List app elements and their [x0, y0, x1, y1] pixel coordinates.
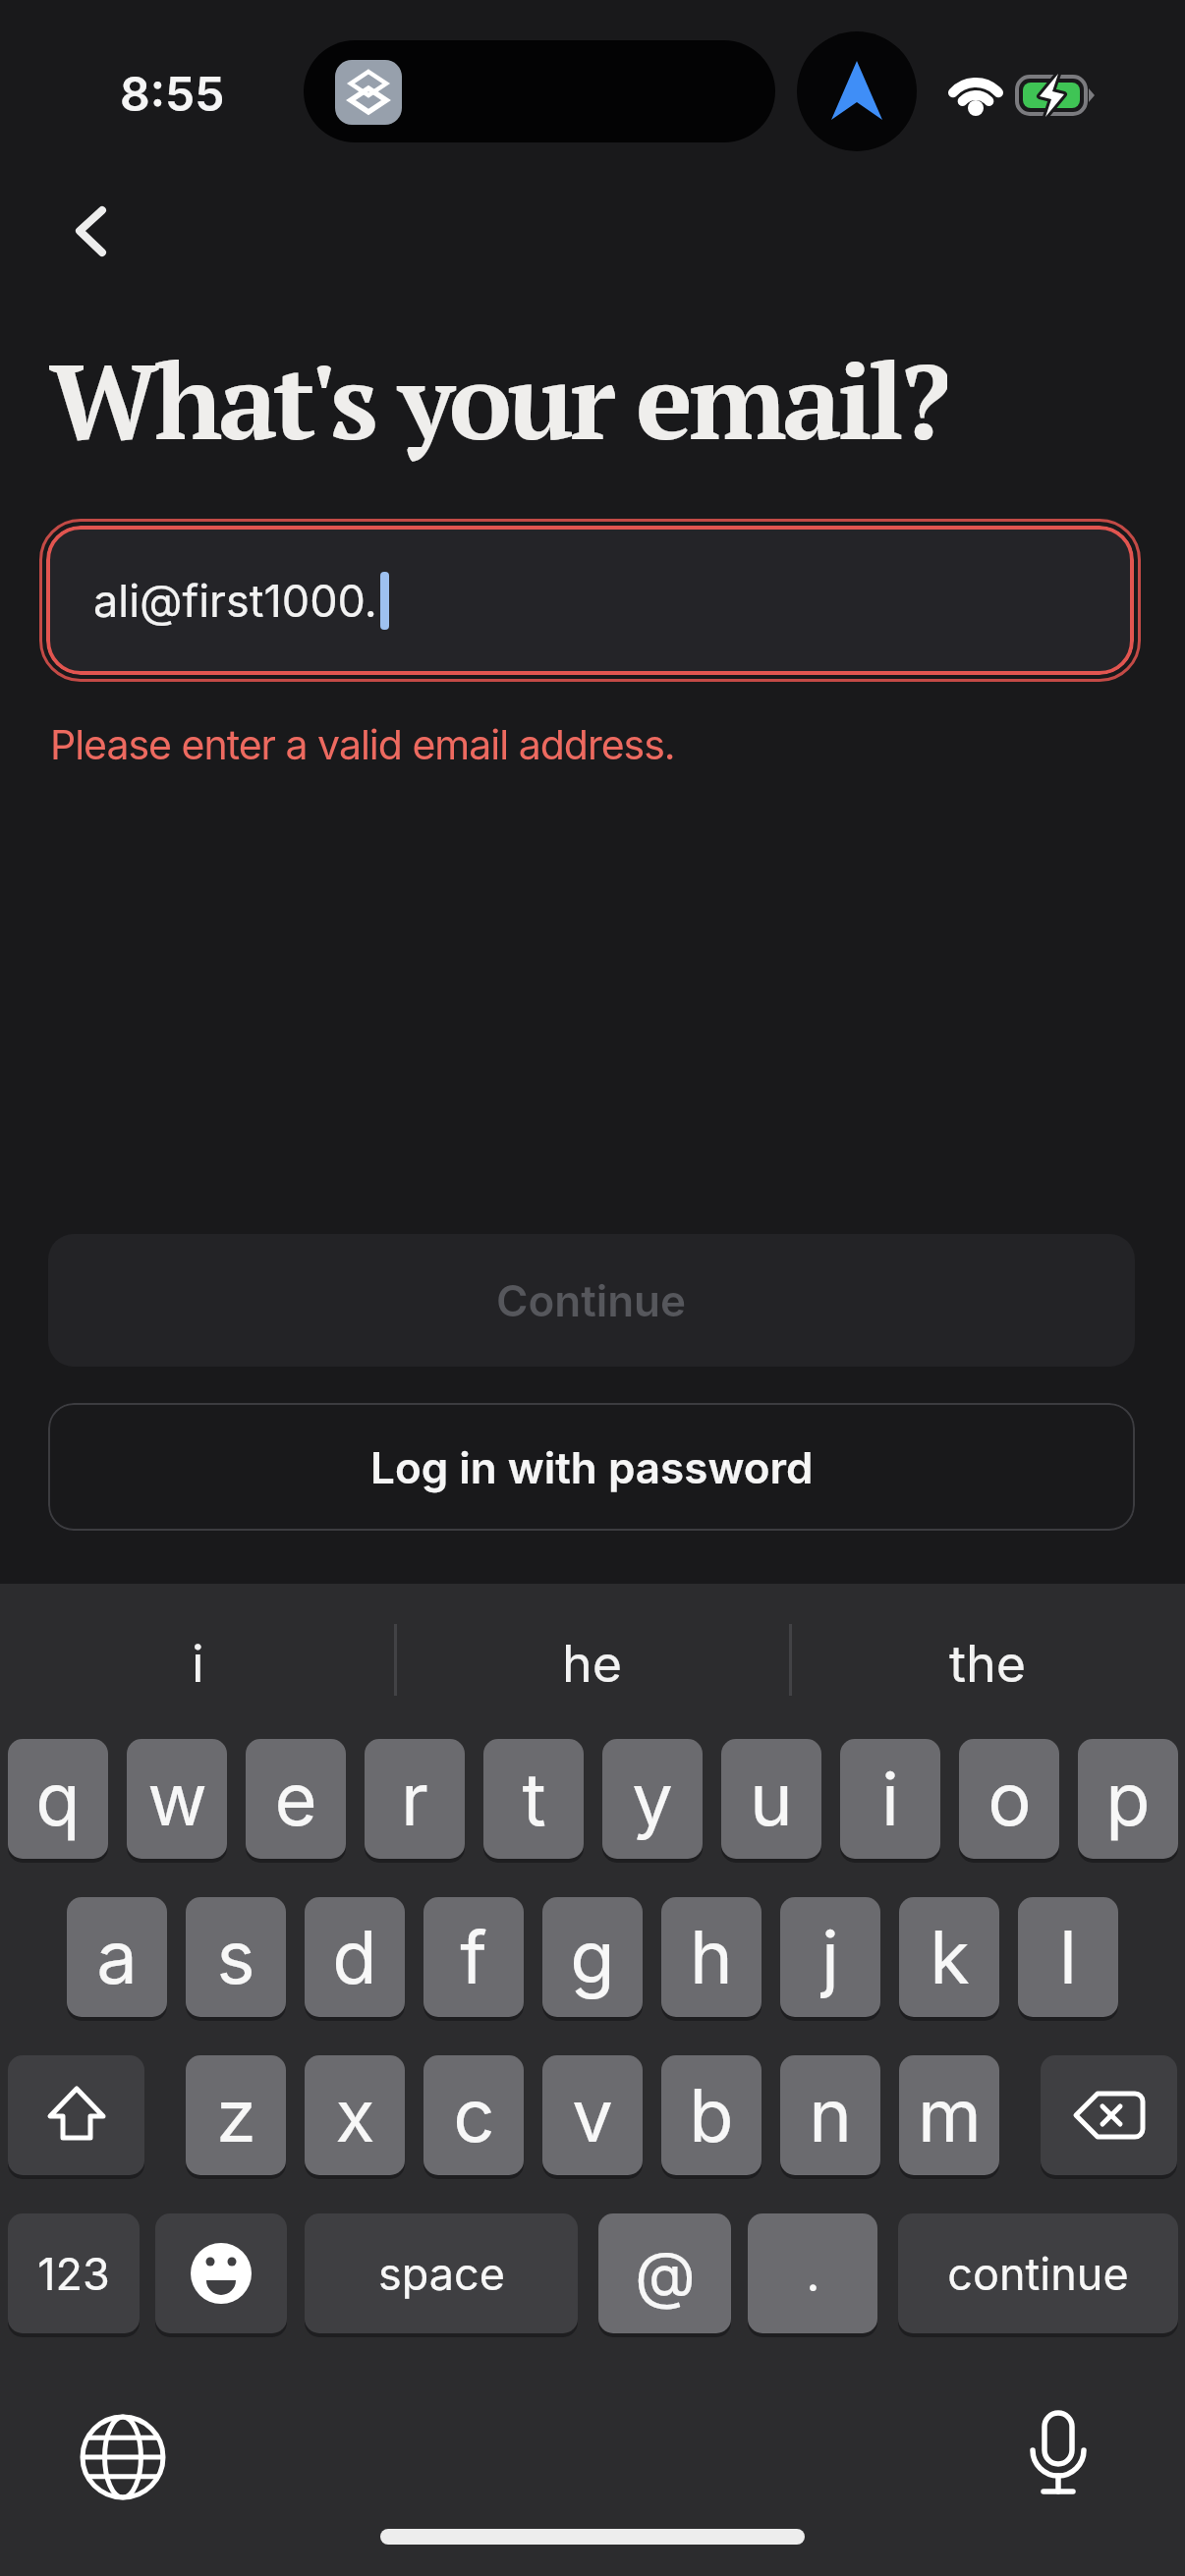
button[interactable]: l: [1018, 1897, 1118, 2017]
button[interactable]: [8, 2055, 144, 2175]
staticText: i: [881, 1755, 899, 1843]
staticText: b: [689, 2071, 734, 2159]
button[interactable]: s: [186, 1897, 286, 2017]
button[interactable]: the: [790, 1631, 1185, 1696]
button[interactable]: @: [598, 2213, 731, 2333]
staticText: p: [1105, 1755, 1151, 1843]
button[interactable]: n: [780, 2055, 880, 2175]
button[interactable]: d: [305, 1897, 405, 2017]
staticText: l: [1059, 1913, 1077, 2001]
button[interactable]: h: [661, 1897, 762, 2017]
staticText: a: [96, 1913, 138, 2001]
staticText: k: [930, 1913, 970, 2001]
staticText: space: [378, 2247, 505, 2300]
staticText: t: [522, 1755, 546, 1843]
staticText: u: [750, 1755, 793, 1843]
staticText: d: [332, 1913, 377, 2001]
staticText: i: [192, 1633, 204, 1695]
staticText: z: [216, 2071, 256, 2159]
staticText: o: [987, 1755, 1032, 1843]
button[interactable]: q: [8, 1739, 108, 1859]
staticText: c: [453, 2071, 495, 2159]
button[interactable]: .: [748, 2213, 877, 2333]
button[interactable]: 123: [8, 2213, 140, 2333]
button[interactable]: t: [483, 1739, 584, 1859]
staticText: Continue: [496, 1274, 687, 1326]
button[interactable]: a: [67, 1897, 167, 2017]
staticText: m: [918, 2071, 982, 2159]
button[interactable]: Continue: [48, 1234, 1135, 1367]
button[interactable]: Log in with password: [48, 1403, 1135, 1531]
staticText: @: [635, 2236, 696, 2312]
button[interactable]: i: [0, 1631, 395, 1696]
staticText: .: [806, 2244, 820, 2303]
button[interactable]: i: [840, 1739, 940, 1859]
button[interactable]: e: [246, 1739, 346, 1859]
button[interactable]: x: [305, 2055, 405, 2175]
staticText: 8:55: [120, 65, 225, 122]
staticText: v: [572, 2071, 613, 2159]
staticText: ali@first1000.: [93, 574, 377, 627]
button[interactable]: k: [899, 1897, 999, 2017]
staticText: j: [821, 1913, 839, 2001]
button[interactable]: [69, 2403, 177, 2511]
staticText: n: [809, 2071, 852, 2159]
staticText: What's your email?: [49, 329, 947, 467]
staticText: x: [335, 2071, 375, 2159]
staticText: r: [401, 1755, 428, 1843]
button[interactable]: z: [186, 2055, 286, 2175]
button[interactable]: v: [542, 2055, 643, 2175]
button[interactable]: y: [602, 1739, 703, 1859]
button[interactable]: o: [959, 1739, 1059, 1859]
staticText: Please enter a valid email address.: [50, 720, 675, 769]
button[interactable]: u: [721, 1739, 821, 1859]
button[interactable]: he: [395, 1631, 790, 1696]
button[interactable]: c: [423, 2055, 524, 2175]
button[interactable]: f: [423, 1897, 524, 2017]
staticText: y: [632, 1755, 673, 1843]
staticText: q: [35, 1755, 81, 1843]
button[interactable]: [59, 192, 128, 270]
button[interactable]: ali@first1000.: [46, 526, 1134, 675]
button[interactable]: g: [542, 1897, 643, 2017]
button[interactable]: space: [305, 2213, 578, 2333]
button[interactable]: [1002, 2403, 1110, 2511]
button[interactable]: [1041, 2055, 1177, 2175]
staticText: 123: [37, 2247, 110, 2300]
staticText: w: [147, 1755, 207, 1843]
button[interactable]: r: [365, 1739, 465, 1859]
staticText: continue: [947, 2247, 1129, 2300]
button[interactable]: [155, 2213, 287, 2333]
button[interactable]: w: [127, 1739, 227, 1859]
button[interactable]: p: [1078, 1739, 1178, 1859]
button[interactable]: j: [780, 1897, 880, 2017]
staticText: Log in with password: [370, 1441, 814, 1493]
staticText: the: [949, 1633, 1027, 1695]
staticText: he: [562, 1633, 623, 1695]
staticText: s: [216, 1913, 255, 2001]
button[interactable]: continue: [898, 2213, 1178, 2333]
button[interactable]: b: [661, 2055, 762, 2175]
button[interactable]: m: [899, 2055, 999, 2175]
staticText: f: [460, 1913, 487, 2001]
staticText: h: [690, 1913, 733, 2001]
staticText: g: [570, 1913, 615, 2001]
staticText: e: [274, 1755, 317, 1843]
